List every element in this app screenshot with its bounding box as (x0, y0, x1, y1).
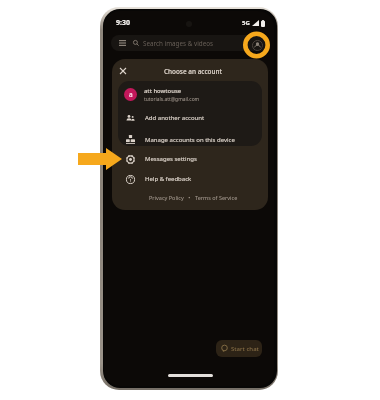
button[interactable]: a (118, 81, 262, 107)
staticText: a (129, 90, 133, 99)
staticText: Messages settings (145, 155, 197, 163)
staticText: 9:30 (116, 18, 130, 28)
button[interactable]: Menu (111, 35, 268, 51)
button[interactable]: Terms of Service (195, 194, 238, 201)
other: Menu (119, 40, 126, 46)
staticText: tutorials.att@gmail.com (144, 96, 200, 103)
staticText: Help & feedback (145, 175, 192, 183)
button[interactable]: Privacy Policy (149, 194, 184, 201)
button[interactable]: Add another account (118, 109, 262, 127)
staticText: Search images & videos (143, 39, 214, 48)
button[interactable]: Close (115, 63, 131, 79)
staticText: Start chat (231, 345, 259, 353)
staticText: Add another account (145, 114, 205, 122)
button[interactable]: Start chat (216, 340, 262, 357)
button[interactable]: Help & feedback (112, 169, 268, 189)
staticText: • (184, 194, 195, 201)
button[interactable]: Messages settings (112, 149, 268, 169)
staticText: Manage accounts on this device (145, 136, 235, 144)
staticText: att howtouse (144, 87, 182, 95)
button[interactable]: Manage accounts on this device (118, 130, 262, 146)
button[interactable]: Account (251, 39, 263, 51)
staticText: Choose an account (164, 67, 222, 76)
staticText: 5G (242, 19, 250, 27)
